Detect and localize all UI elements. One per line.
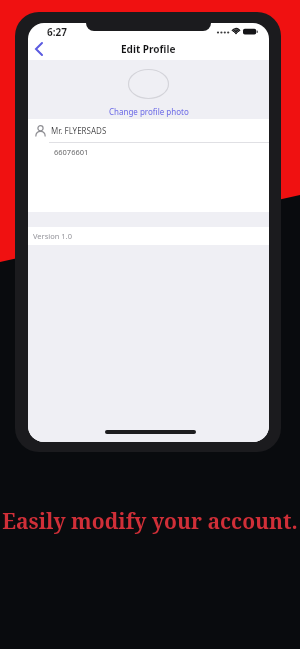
button[interactable] [30, 39, 50, 59]
staticText: Version 1.0 [33, 231, 72, 241]
staticText: Edit Profile [121, 42, 176, 56]
staticText: Easily modify your account. [2, 507, 298, 536]
staticText: Change profile photo [109, 106, 189, 117]
staticText: 6:27 [47, 25, 67, 39]
button[interactable]: Mr. FLYERSADS [28, 119, 269, 143]
staticText: Mr. FLYERSADS [51, 125, 107, 136]
button[interactable]: Version 1.0 [28, 226, 269, 245]
button[interactable]: Change profile photo [28, 105, 269, 117]
staticText: 66076601 [54, 147, 89, 157]
